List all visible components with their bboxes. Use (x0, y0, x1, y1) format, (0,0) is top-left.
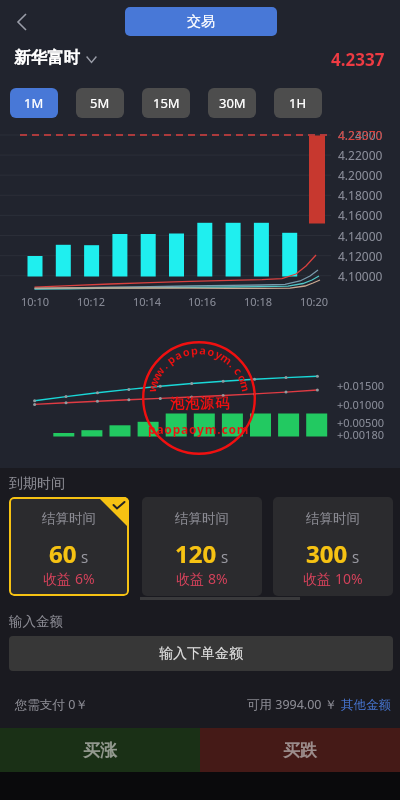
staticText: S (352, 549, 360, 567)
button[interactable]: 其他金额 (341, 697, 391, 713)
staticText: 10:20 (300, 294, 329, 309)
staticText: 120 (175, 537, 217, 570)
staticText: 300 (306, 537, 348, 570)
staticText: S (221, 549, 229, 567)
staticText: 4.23370 (338, 127, 383, 143)
staticText: 4.20000 (338, 167, 383, 183)
button[interactable]: 1H (274, 88, 322, 118)
staticText: 可用 3994.00 ￥ (247, 696, 341, 713)
button[interactable]: 买跌 (200, 728, 400, 772)
button[interactable]: 交易 (125, 7, 277, 36)
staticText: +0.00180 (337, 427, 384, 442)
staticText: 4.2337 (331, 48, 385, 71)
staticText: 收益 (43, 569, 75, 588)
staticText: 结算时间 (175, 510, 229, 527)
staticText: 4.10000 (338, 268, 383, 284)
button[interactable]: 5M (76, 88, 124, 118)
staticText: 输入金额 (9, 613, 63, 630)
button[interactable]: 结算时间 (142, 497, 262, 596)
staticText: 60 (49, 537, 77, 570)
button[interactable]: Back (6, 6, 38, 38)
staticText: 5M (90, 94, 110, 112)
staticText: 6% (75, 569, 95, 588)
button[interactable]: 买涨 (0, 728, 200, 772)
staticText: +0.00500 (337, 415, 384, 430)
staticText: S (81, 549, 89, 567)
staticText: 10:16 (188, 294, 217, 309)
button[interactable]: 结算时间 (273, 497, 393, 596)
staticText: 4.18000 (338, 187, 383, 203)
staticText: 买跌 (283, 740, 317, 761)
button[interactable]: 15M (142, 88, 190, 118)
staticText: 10:12 (77, 294, 106, 309)
staticText: 30M (219, 94, 246, 112)
staticText: +0.01000 (337, 397, 384, 412)
staticText: 收益 (176, 569, 208, 588)
staticText: 15M (153, 94, 180, 112)
staticText: 10% (335, 569, 363, 588)
button[interactable]: 结算时间 (9, 497, 129, 596)
staticText: 8% (208, 569, 228, 588)
staticText: 到期时间 (9, 475, 65, 493)
staticText: 收益 (303, 569, 335, 588)
staticText: 买涨 (83, 740, 117, 761)
staticText: 4.24000 (338, 127, 383, 143)
button[interactable]: 输入下单金额 (9, 636, 393, 671)
staticText: 10:10 (21, 294, 50, 309)
staticText: 输入下单金额 (159, 645, 243, 663)
staticText: 1M (24, 94, 44, 112)
staticText: 10:18 (244, 294, 273, 309)
staticText: 4.12000 (338, 248, 383, 264)
staticText: 新华富时 (14, 47, 80, 68)
staticText: 1H (289, 94, 307, 112)
button[interactable]: 新华富时 (14, 47, 97, 68)
staticText: 您需支付 0￥ (15, 696, 88, 713)
staticText: 4.14000 (338, 228, 383, 244)
button[interactable]: 30M (208, 88, 256, 118)
staticText: 4.22000 (338, 147, 383, 163)
staticText: 结算时间 (42, 510, 96, 527)
staticText: 4.16000 (338, 207, 383, 223)
staticText: +0.01500 (337, 378, 384, 393)
staticText: 结算时间 (306, 510, 360, 527)
button[interactable]: 1M (10, 88, 58, 118)
staticText: 10:14 (133, 294, 162, 309)
staticText: 交易 (187, 13, 215, 31)
